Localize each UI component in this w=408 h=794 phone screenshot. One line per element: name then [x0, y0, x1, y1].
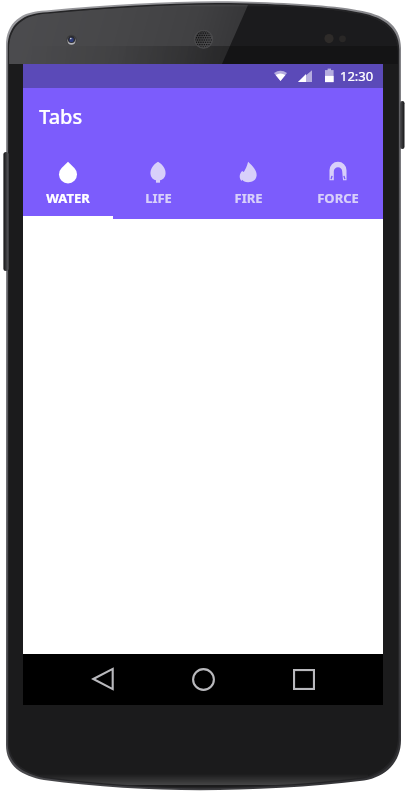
button[interactable]: Recents: [279, 654, 329, 704]
staticText: Tabs: [39, 103, 83, 130]
button[interactable]: Home: [178, 654, 228, 704]
staticText: 12:30: [340, 67, 374, 85]
button[interactable]: FORCE: [293, 144, 383, 219]
button[interactable]: WATER: [23, 144, 113, 219]
staticText: LIFE: [145, 189, 172, 207]
staticText: WATER: [46, 189, 90, 207]
button[interactable]: Back: [78, 654, 128, 704]
button[interactable]: FIRE: [203, 144, 293, 219]
staticText: FIRE: [234, 189, 263, 207]
staticText: FORCE: [317, 189, 359, 207]
button[interactable]: LIFE: [113, 144, 203, 219]
